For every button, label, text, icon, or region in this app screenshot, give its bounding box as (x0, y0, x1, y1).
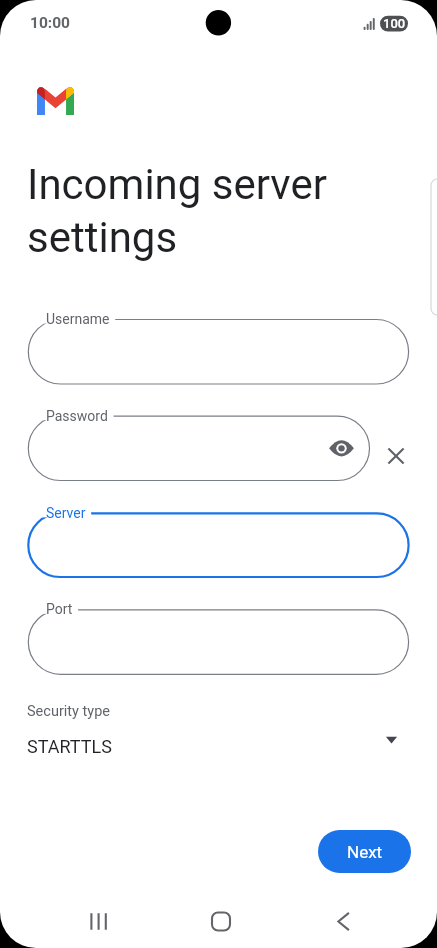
staticText: 100 (383, 16, 406, 31)
button[interactable] (28, 610, 408, 675)
staticText: Port (46, 601, 73, 617)
staticText: Next (347, 842, 383, 862)
button[interactable] (28, 320, 408, 385)
staticText: Incoming server settings (27, 160, 327, 262)
button[interactable] (28, 513, 408, 577)
staticText: STARTTLS (27, 736, 112, 757)
button[interactable]: Back (319, 885, 374, 935)
staticText: Security type (27, 703, 110, 720)
staticText: Username (46, 311, 110, 327)
button[interactable]: Next (318, 830, 411, 873)
button[interactable] (28, 416, 369, 480)
staticText: 10:00 (30, 14, 70, 32)
staticText: Server (46, 505, 86, 521)
staticText: Password (46, 408, 108, 424)
button[interactable]: Security type (27, 700, 409, 762)
button[interactable]: Home (191, 885, 246, 935)
button[interactable]: Recents (73, 885, 128, 935)
button[interactable]: Clear password (378, 438, 414, 474)
